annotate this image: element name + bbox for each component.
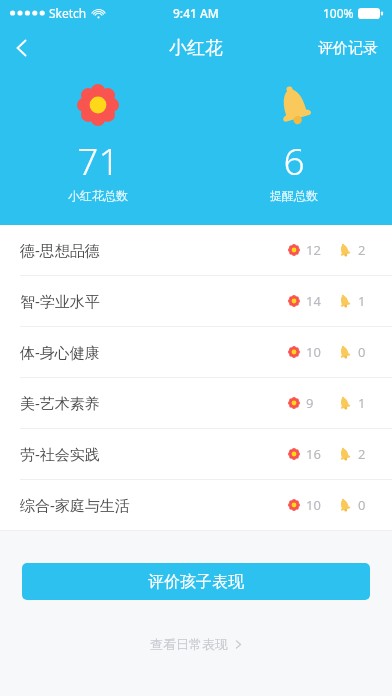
staticText: 德-思想品德 [20, 240, 100, 260]
staticText: 综合-家庭与生活 [20, 495, 130, 515]
staticText: 评价孩子表现 [148, 572, 244, 592]
button[interactable]: 智-学业水平 [0, 276, 392, 326]
button[interactable]: 评价记录 [316, 33, 380, 64]
staticText: 1 [358, 394, 366, 412]
button[interactable]: 评价孩子表现 [22, 563, 370, 600]
staticText: 0 [358, 496, 366, 514]
staticText: 10 [306, 496, 321, 514]
staticText: 16 [306, 445, 321, 463]
button[interactable]: 德-思想品德 [0, 225, 392, 275]
staticText: Sketch [49, 5, 87, 21]
staticText: 100% [323, 5, 354, 21]
staticText: 2 [358, 445, 366, 463]
button[interactable]: 美-艺术素养 [0, 378, 392, 428]
staticText: 6 [283, 135, 305, 185]
staticText: 2 [358, 241, 366, 259]
staticText: 1 [358, 292, 366, 310]
staticText: 0 [358, 343, 366, 361]
button[interactable]: 综合-家庭与生活 [0, 480, 392, 530]
staticText: 劳-社会实践 [20, 444, 100, 464]
button[interactable]: 劳-社会实践 [0, 429, 392, 479]
staticText: 12 [306, 241, 321, 259]
staticText: 查看日常表现 [150, 636, 228, 652]
staticText: 小红花总数 [68, 188, 128, 203]
button[interactable]: 体-身心健康 [0, 327, 392, 377]
staticText: 14 [306, 292, 321, 310]
staticText: 9 [306, 394, 314, 412]
staticText: 9:41 AM [173, 5, 219, 21]
staticText: 体-身心健康 [20, 342, 100, 362]
staticText: 71 [77, 135, 120, 185]
staticText: 小红花 [169, 37, 223, 60]
staticText: 智-学业水平 [20, 291, 100, 311]
staticText: 评价记录 [318, 39, 378, 58]
staticText: 提醒总数 [270, 188, 318, 203]
button[interactable]: Back [0, 26, 44, 70]
staticText: 10 [306, 343, 321, 361]
button[interactable]: 查看日常表现 [140, 630, 253, 658]
staticText: 美-艺术素养 [20, 393, 100, 413]
